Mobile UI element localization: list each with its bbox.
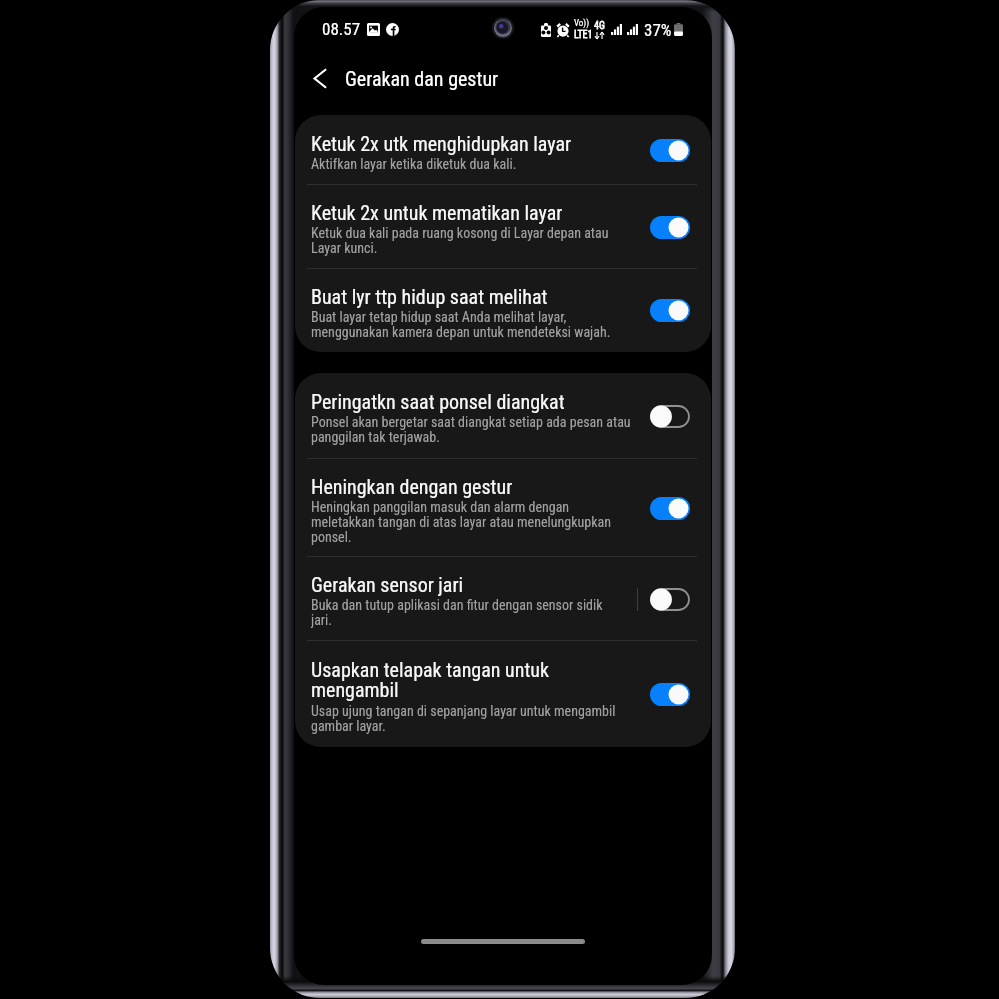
staticText: Gerakan sensor jari [311, 573, 464, 596]
button[interactable]: Usapkan telapak tangan untuk mengambil [295, 641, 711, 747]
button[interactable]: Switch on [650, 497, 690, 520]
staticText: Heningkan panggilan masuk dan alarm deng… [311, 499, 633, 545]
button[interactable]: Buat lyr ttp hidup saat melihat [295, 269, 711, 352]
staticText: Ketuk 2x utk menghidupkan layar [311, 132, 572, 155]
staticText: Ketuk 2x untuk mematikan layar [311, 201, 563, 224]
staticText: 08.57 [322, 19, 361, 39]
button[interactable]: Ketuk 2x utk menghidupkan layar [295, 115, 711, 185]
button[interactable]: Peringatkn saat ponsel diangkat [295, 373, 711, 459]
staticText: Gerakan dan gestur [345, 67, 499, 90]
button[interactable]: Ketuk 2x untuk mematikan layar [295, 185, 711, 269]
staticText: Usapkan telapak tangan untuk mengambil [311, 658, 633, 702]
staticText: Buat lyr ttp hidup saat melihat [311, 285, 548, 308]
staticText: Usap ujung tangan di sepanjang layar unt… [311, 703, 633, 734]
button[interactable]: Switch on [650, 139, 690, 162]
button[interactable]: Gerakan sensor jari [295, 557, 711, 641]
button[interactable]: Switch off [650, 405, 690, 428]
staticText: Buat layar tetap hidup saat Anda melihat… [311, 309, 633, 340]
staticText: LTE1 [574, 29, 593, 41]
button[interactable]: Back [294, 51, 345, 106]
staticText: Ketuk dua kali pada ruang kosong di Laya… [311, 225, 633, 256]
staticText: Aktifkan layar ketika diketuk dua kali. [311, 156, 517, 172]
button[interactable]: Heningkan dengan gestur [295, 459, 711, 557]
staticText: Vo)) [574, 18, 590, 29]
staticText: Buka dan tutup aplikasi dan fitur dengan… [311, 597, 622, 628]
staticText: 37% [644, 20, 672, 40]
staticText: 4G [594, 20, 605, 32]
staticText: Heningkan dengan gestur [311, 475, 513, 498]
button[interactable]: Switch off [650, 588, 690, 611]
button[interactable]: Switch on [650, 299, 690, 322]
button[interactable]: Switch on [650, 683, 690, 706]
staticText: Peringatkn saat ponsel diangkat [311, 390, 565, 413]
staticText: Ponsel akan bergetar saat diangkat setia… [311, 414, 633, 445]
button[interactable]: Switch on [650, 216, 690, 239]
